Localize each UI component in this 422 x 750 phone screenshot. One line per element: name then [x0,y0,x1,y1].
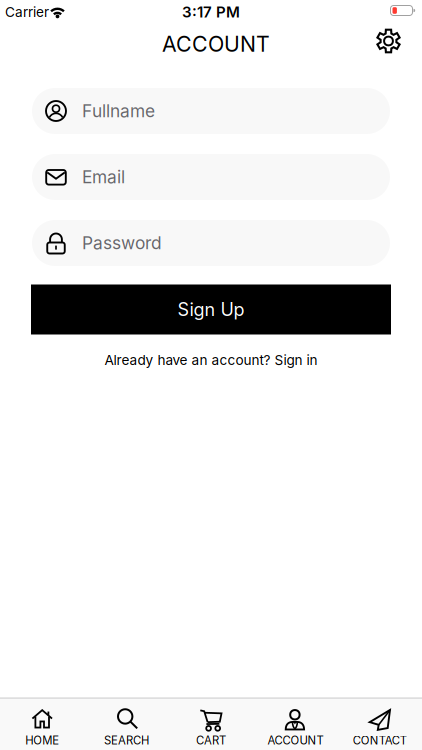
staticText: ACCOUNT [162,31,270,57]
button[interactable]: Already have an account? Sign in [104,352,317,368]
staticText: Sign Up [177,299,244,320]
button[interactable]: ACCOUNT [253,698,338,750]
staticText: Password [82,232,162,253]
staticText: Email [82,166,125,187]
button[interactable]: SEARCH [84,698,169,750]
staticText: CART [196,734,226,747]
staticText: SEARCH [104,734,149,747]
staticText: HOME [25,734,59,747]
staticText: Carrier [5,4,49,20]
staticText: ACCOUNT [267,734,323,747]
button[interactable]: Password [32,220,390,266]
button[interactable]: Fullname [32,88,390,134]
button[interactable]: CART [169,698,253,750]
staticText: Fullname [82,100,155,121]
button[interactable]: CONTACT [338,698,422,750]
staticText: CONTACT [353,734,407,747]
button[interactable]: Settings [368,21,408,61]
button[interactable]: Email [32,154,390,200]
staticText: Already have an account? Sign in [104,352,317,368]
staticText: 3:17 PM [182,3,240,21]
button[interactable]: HOME [0,698,84,750]
button[interactable]: Sign Up [31,284,391,334]
